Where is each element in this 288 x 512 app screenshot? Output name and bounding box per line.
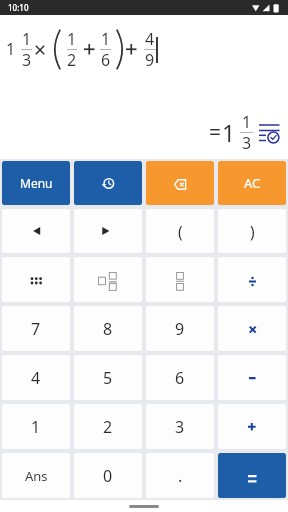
button[interactable] bbox=[74, 257, 142, 302]
staticText: 3 bbox=[22, 49, 32, 71]
staticText: 8 bbox=[103, 318, 113, 340]
button[interactable] bbox=[146, 257, 214, 302]
staticText: ( bbox=[178, 221, 183, 242]
staticText: 1 bbox=[6, 38, 16, 60]
button[interactable] bbox=[74, 161, 142, 205]
button[interactable] bbox=[2, 257, 70, 302]
staticText: 5 bbox=[103, 367, 113, 389]
staticText: 3 bbox=[242, 132, 252, 154]
button[interactable]: ) bbox=[218, 209, 286, 253]
staticText: Ans bbox=[25, 467, 48, 485]
staticText: 10:10 bbox=[8, 2, 29, 13]
staticText: 1 bbox=[31, 416, 41, 438]
button[interactable]: 3 bbox=[146, 404, 214, 449]
button[interactable] bbox=[218, 404, 286, 449]
button[interactable]: 7 bbox=[2, 306, 70, 351]
staticText: 9 bbox=[175, 318, 185, 340]
staticText: ) bbox=[250, 221, 255, 242]
button[interactable]: 1 bbox=[2, 404, 70, 449]
button[interactable]: . bbox=[146, 453, 214, 498]
button[interactable]: Menu bbox=[2, 161, 70, 205]
button[interactable]: Ans bbox=[2, 453, 70, 498]
staticText: 2 bbox=[103, 416, 113, 438]
staticText: 6 bbox=[101, 49, 111, 71]
staticText: AC bbox=[244, 174, 261, 192]
staticText: 4 bbox=[31, 367, 41, 389]
button[interactable] bbox=[259, 124, 280, 143]
button[interactable]: 4 bbox=[2, 355, 70, 400]
staticText: 1 bbox=[242, 111, 252, 133]
button[interactable]: 2 bbox=[74, 404, 142, 449]
staticText: 1 bbox=[22, 28, 32, 50]
button[interactable]: 5 bbox=[74, 355, 142, 400]
button[interactable] bbox=[218, 306, 286, 351]
button[interactable] bbox=[74, 209, 142, 253]
staticText: 2 bbox=[67, 49, 77, 71]
staticText: 1 bbox=[222, 117, 236, 148]
button[interactable]: ( bbox=[146, 209, 214, 253]
button[interactable]: 9 bbox=[146, 306, 214, 351]
staticText: 6 bbox=[175, 367, 185, 389]
button[interactable] bbox=[146, 161, 214, 205]
staticText: . bbox=[178, 465, 183, 487]
button[interactable] bbox=[2, 209, 70, 253]
button[interactable] bbox=[218, 355, 286, 400]
button[interactable]: AC bbox=[218, 161, 286, 205]
staticText: 9 bbox=[145, 49, 155, 71]
button[interactable]: 6 bbox=[146, 355, 214, 400]
staticText: 4 bbox=[145, 28, 155, 50]
button[interactable] bbox=[218, 257, 286, 302]
button[interactable]: 8 bbox=[74, 306, 142, 351]
staticText: 1 bbox=[101, 28, 111, 50]
staticText: 7 bbox=[31, 318, 41, 340]
button[interactable] bbox=[218, 453, 286, 498]
staticText: 0 bbox=[103, 465, 113, 487]
button[interactable]: 0 bbox=[74, 453, 142, 498]
staticText: = bbox=[209, 118, 222, 147]
staticText: 1 bbox=[67, 28, 77, 50]
staticText: Menu bbox=[20, 175, 53, 191]
staticText: 3 bbox=[175, 416, 185, 438]
